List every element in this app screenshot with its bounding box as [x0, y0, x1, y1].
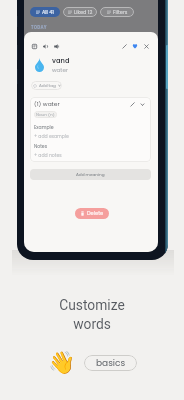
button[interactable]: Add meaning [30, 169, 151, 180]
button[interactable]: Copy [32, 44, 37, 49]
button[interactable]: Filters [100, 7, 134, 17]
staticText: Add meaning [76, 172, 105, 178]
button[interactable]: Add tag [31, 81, 62, 90]
staticText: Example [34, 124, 54, 130]
staticText: 👋 [48, 350, 76, 376]
staticText: TODAY [31, 25, 47, 31]
staticText: (1) water [34, 100, 60, 108]
staticText: Liked 12 [74, 9, 93, 16]
button[interactable]: Edit meaning [130, 102, 135, 107]
button[interactable]: Delete [75, 208, 109, 219]
staticText: Filters [113, 9, 128, 16]
staticText: All 41 [42, 9, 54, 16]
staticText: vand [52, 56, 70, 65]
button[interactable]: Play pronunciation [43, 44, 48, 49]
button[interactable]: Practice speaking [54, 44, 59, 49]
button[interactable]: All 41 [30, 7, 60, 17]
staticText: basics [96, 357, 126, 370]
button[interactable]: Liked 12 [63, 7, 97, 17]
button[interactable]: Favourite [132, 43, 138, 49]
staticText: + add notes [34, 152, 62, 158]
staticText: Customize words [0, 297, 184, 333]
staticText: Delete [87, 210, 104, 217]
staticText: + add example [34, 133, 69, 139]
button[interactable]: Edit word [122, 44, 127, 49]
button[interactable]: Close [144, 44, 149, 49]
staticText: Notes [34, 143, 48, 149]
staticText: water [52, 66, 68, 74]
button[interactable]: basics [84, 355, 137, 371]
button[interactable]: Expand meaning [140, 102, 145, 107]
staticText: Noun (n) [36, 112, 55, 118]
staticText: Add tag [39, 83, 56, 89]
